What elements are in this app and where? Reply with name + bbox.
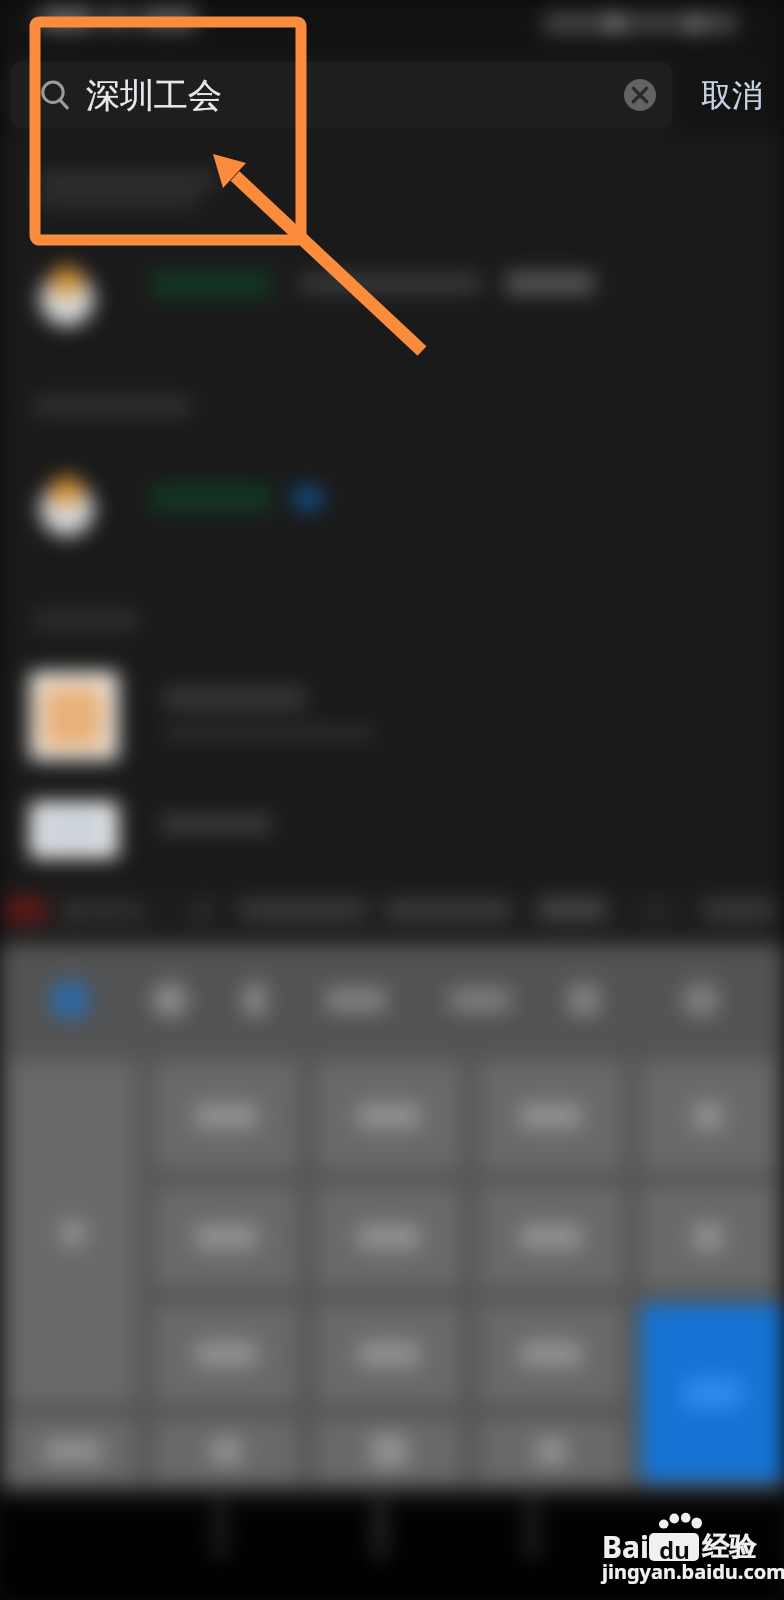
button[interactable] — [154, 1419, 298, 1482]
staticText: jingyan.baidu.com — [602, 1558, 784, 1585]
staticText: Bai — [602, 1526, 649, 1567]
button[interactable] — [641, 1186, 775, 1288]
button[interactable] — [316, 1062, 461, 1170]
staticText: 经验 — [702, 1530, 756, 1564]
button[interactable] — [316, 1304, 461, 1403]
staticText: 取消 — [701, 76, 763, 115]
button[interactable]: 取消 — [680, 62, 784, 128]
button[interactable] — [641, 1062, 775, 1170]
button[interactable] — [479, 1062, 623, 1170]
button[interactable] — [154, 1186, 298, 1288]
staticText: 深圳工会 — [86, 74, 222, 117]
button[interactable] — [9, 1419, 136, 1482]
button[interactable] — [479, 1304, 623, 1403]
staticText: du — [659, 1533, 690, 1561]
button[interactable]: Enter — [641, 1304, 784, 1482]
button[interactable] — [316, 1419, 461, 1482]
button[interactable] — [479, 1186, 623, 1288]
button[interactable] — [479, 1419, 623, 1482]
button[interactable]: Clear text — [624, 79, 656, 111]
button[interactable] — [154, 1304, 298, 1403]
button[interactable]: 深圳工会 — [10, 62, 672, 128]
button[interactable] — [316, 1186, 461, 1288]
button[interactable] — [9, 1062, 136, 1403]
button[interactable] — [154, 1062, 298, 1170]
